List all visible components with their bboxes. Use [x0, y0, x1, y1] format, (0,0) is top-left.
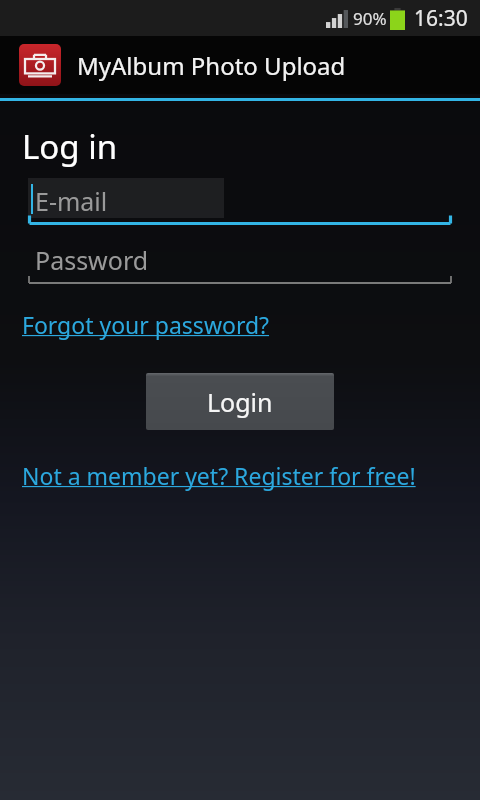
staticText: 90% [353, 7, 387, 30]
button[interactable]: Password [28, 237, 452, 285]
button[interactable]: Forgot your password? [22, 307, 280, 342]
staticText: E-mail [35, 184, 108, 218]
staticText: Not a member yet? Register for free! [22, 460, 416, 491]
staticText: Log in [22, 124, 118, 169]
button[interactable]: Login [146, 373, 334, 430]
staticText: Login [207, 385, 273, 419]
staticText: 16:30 [414, 4, 468, 33]
button[interactable]: Not a member yet? Register for free! [22, 458, 424, 493]
staticText: Password [35, 243, 149, 277]
staticText: MyAlbum Photo Upload [77, 49, 346, 82]
staticText: Forgot your password? [22, 309, 270, 340]
button[interactable]: E-mail [28, 178, 452, 226]
